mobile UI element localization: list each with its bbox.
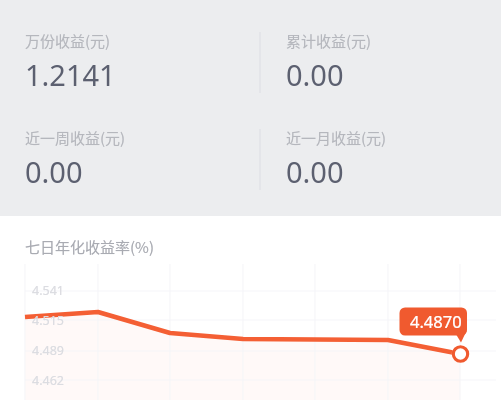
staticText: 4.541 [32, 282, 64, 299]
staticText: 近一月收益(元) [286, 127, 387, 149]
staticText: 万份收益(元) [25, 30, 111, 52]
staticText: 0.00 [286, 55, 344, 94]
staticText: 0.00 [25, 152, 83, 191]
staticText: 4.489 [32, 342, 64, 359]
staticText: 0.00 [286, 152, 344, 191]
staticText: 4.4870 [410, 310, 462, 332]
staticText: 4.515 [32, 312, 64, 329]
button[interactable]: Data point value 4.4870 [399, 307, 468, 343]
staticText: 累计收益(元) [286, 30, 372, 52]
staticText: 1.2141 [25, 55, 116, 94]
staticText: 七日年化收益率(%) [25, 236, 154, 258]
staticText: 近一周收益(元) [25, 127, 126, 149]
staticText: 4.462 [32, 372, 64, 389]
